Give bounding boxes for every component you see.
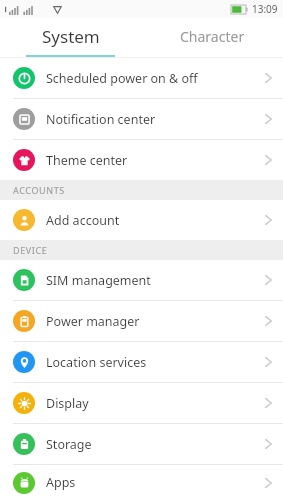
other: Open Display: [264, 396, 273, 410]
staticText: Theme center: [46, 152, 128, 169]
button[interactable]: Apps: [0, 465, 283, 500]
staticText: System: [42, 25, 100, 48]
staticText: Add account: [46, 212, 120, 229]
staticText: Location services: [46, 354, 147, 371]
button[interactable]: Notification center: [0, 99, 283, 139]
other: Open Add account: [264, 213, 273, 227]
button[interactable]: Location services: [0, 342, 283, 382]
staticText: Apps: [46, 474, 76, 491]
staticText: Character: [180, 27, 245, 46]
button[interactable]: Add account: [0, 200, 283, 240]
button[interactable]: Storage: [0, 424, 283, 464]
button[interactable]: Character: [141, 18, 283, 55]
other: Open Apps: [264, 476, 273, 490]
staticText: DEVICE: [13, 244, 48, 256]
staticText: Notification center: [46, 111, 156, 128]
staticText: ACCOUNTS: [13, 184, 65, 196]
staticText: Power manager: [46, 313, 140, 330]
staticText: Display: [46, 395, 89, 412]
other: Open Storage: [264, 437, 273, 451]
button[interactable]: Display: [0, 383, 283, 423]
staticText: Scheduled power on & off: [46, 70, 198, 87]
button[interactable]: System: [0, 18, 141, 55]
button[interactable]: Theme center: [0, 140, 283, 180]
button[interactable]: SIM management: [0, 260, 283, 300]
button[interactable]: Scheduled power on & off: [0, 58, 283, 98]
staticText: SIM management: [46, 272, 151, 289]
staticText: 13:09: [252, 2, 278, 16]
button[interactable]: Power manager: [0, 301, 283, 341]
staticText: Storage: [46, 436, 92, 453]
other: Open Theme center: [264, 153, 273, 167]
other: Open SIM management: [264, 273, 273, 287]
other: Open Scheduled power on & off: [264, 71, 273, 85]
other: Open Location services: [264, 355, 273, 369]
other: Open Notification center: [264, 112, 273, 126]
other: Open Power manager: [264, 314, 273, 328]
